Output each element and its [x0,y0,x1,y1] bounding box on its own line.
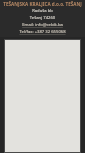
button[interactable]: Email: info@cebik.ba [3,22,82,28]
staticText: Raduša bb [3,8,82,14]
button[interactable]: TEŠANJSKA KRALJICA d.o.o. TEŠANJ [3,1,82,7]
button[interactable]: Page content [4,39,81,153]
button[interactable]: Tel/fax: +387 32 655068 [3,29,82,35]
staticText: TEŠANJSKA KRALJICA d.o.o. TEŠANJ [3,1,82,7]
staticText: Tel/fax: +387 32 655068 [3,29,82,35]
staticText: Email: info@cebik.ba [3,22,82,28]
staticText: Tešanj 74260 [3,15,82,21]
